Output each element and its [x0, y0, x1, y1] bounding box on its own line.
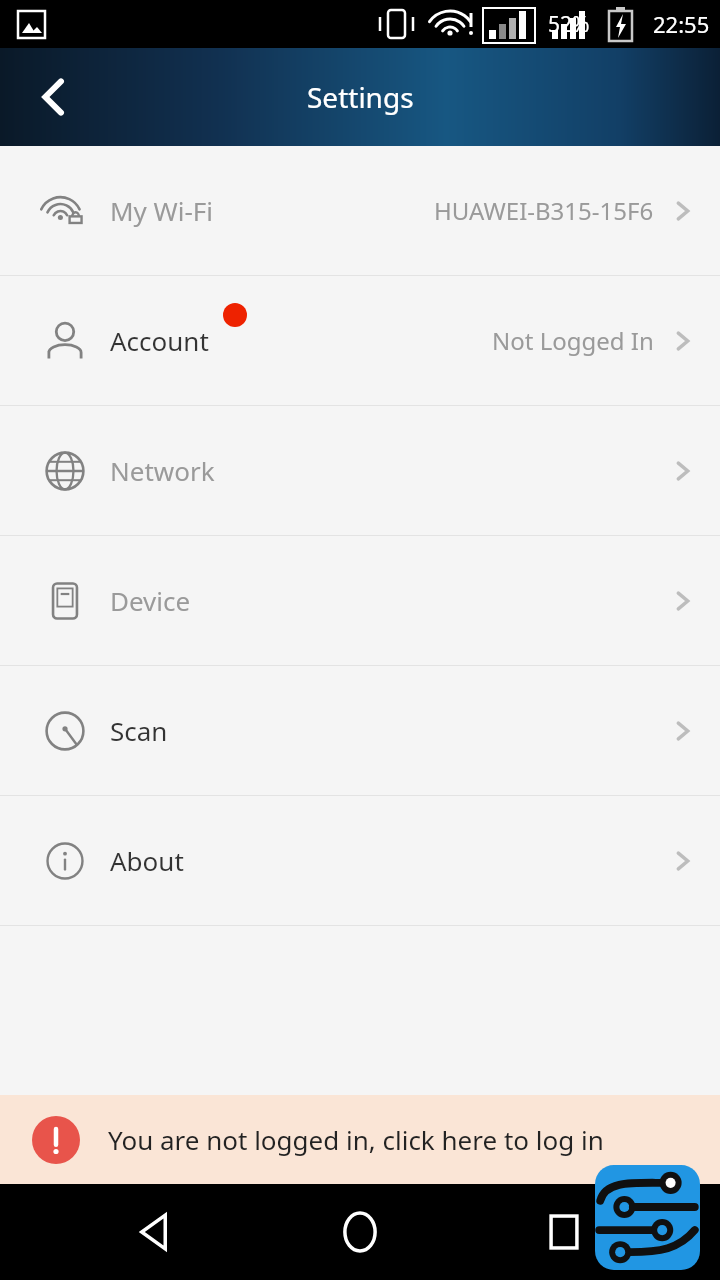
button[interactable]: My Wi-Fi	[0, 146, 720, 275]
staticText: 52%	[548, 10, 590, 39]
staticText: Not Logged In	[492, 324, 654, 357]
button[interactable]: Back	[108, 1184, 204, 1280]
button[interactable]: Recents	[516, 1184, 612, 1280]
staticText: Scan	[110, 713, 168, 748]
button[interactable]: Home	[312, 1184, 408, 1280]
staticText: HUAWEI-B315-15F6	[434, 194, 654, 227]
staticText: About	[110, 843, 184, 878]
button[interactable]: Device	[0, 536, 720, 665]
staticText: My Wi-Fi	[110, 193, 214, 228]
button[interactable]: About	[0, 796, 720, 925]
staticText: 22:55	[653, 9, 710, 39]
button[interactable]: Back	[0, 48, 110, 146]
button[interactable]: Scan	[0, 666, 720, 795]
staticText: Device	[110, 583, 191, 618]
button[interactable]: App shortcut	[595, 1165, 700, 1270]
button[interactable]: You are not logged in, click here to log…	[0, 1095, 720, 1184]
button[interactable]: Account	[0, 276, 720, 405]
button[interactable]: Network	[0, 406, 720, 535]
staticText: Account	[110, 323, 209, 358]
staticText: Settings	[307, 78, 414, 116]
staticText: You are not logged in, click here to log…	[108, 1122, 604, 1157]
staticText: Network	[110, 453, 215, 488]
